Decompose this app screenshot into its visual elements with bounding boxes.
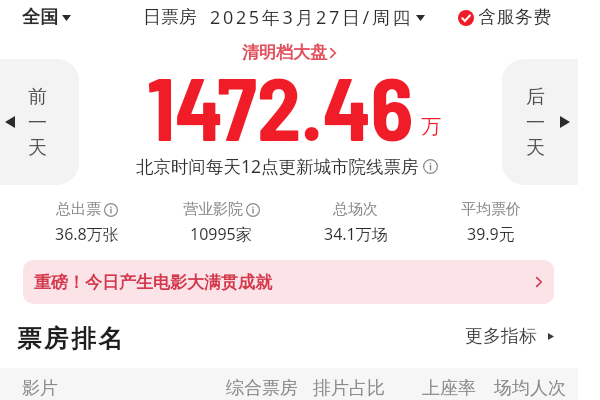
button[interactable]: 重磅！今日产生电影大满贯成就 [23,260,554,304]
staticText: 后 一 天 [526,85,545,160]
button[interactable]: 全国 [22,6,71,29]
button[interactable]: 前一天 [0,59,79,185]
button[interactable]: 平均票价 [423,200,558,245]
staticText: 更多指标 [465,325,537,348]
staticText: 总场次 [333,200,378,219]
staticText: 万 [421,114,441,139]
button[interactable]: 清明档大盘 [242,42,336,63]
staticText: 排片占比 [313,377,385,400]
button[interactable]: 总场次 [288,200,423,245]
staticText: 上座率 [422,377,476,400]
button[interactable]: 后一天 [502,59,578,185]
button[interactable]: 更多指标 [465,325,554,348]
button[interactable]: 含服务费 [458,6,552,29]
staticText: 10995家 [190,223,252,245]
staticText: 票房排名 [17,323,126,354]
staticText: 清明档大盘 [242,42,327,63]
staticText: 综合票房 [226,377,298,400]
staticText: 1472.46 [147,53,414,159]
staticText: 平均票价 [461,200,521,219]
staticText: 36.8万张 [55,223,119,245]
staticText: 含服务费 [478,6,552,29]
staticText: 总出票 [56,200,101,219]
button[interactable]: 日票房 [143,5,425,30]
button[interactable]: 营业影院 [154,200,288,245]
staticText: 2025年3月27日/周四 [210,5,414,30]
button[interactable]: 总出票 [20,200,154,245]
staticText: 营业影院 [183,200,243,219]
staticText: 影片 [22,377,58,400]
staticText: 重磅！今日产生电影大满贯成就 [34,272,272,293]
staticText: 日票房 [143,6,197,29]
staticText: 前 一 天 [28,85,47,160]
staticText: 34.1万场 [324,223,388,245]
staticText: 39.9元 [467,223,515,245]
staticText: 北京时间每天12点更新城市院线票房 [136,154,419,178]
staticText: 全国 [22,6,58,29]
staticText: 场均人次 [494,377,566,400]
